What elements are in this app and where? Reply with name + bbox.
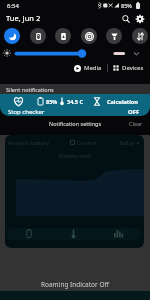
button[interactable]: Settings bbox=[133, 12, 146, 25]
button[interactable]: Clear bbox=[126, 117, 146, 130]
staticText: Devices bbox=[122, 64, 144, 72]
button[interactable]: Flashlight bbox=[106, 28, 122, 44]
button[interactable]: Notification settings bbox=[46, 117, 105, 130]
button[interactable]: Statistics bbox=[96, 228, 141, 240]
staticText: 6:54 bbox=[7, 2, 19, 10]
button[interactable]: Battery bbox=[7, 228, 51, 240]
staticText: 85% bbox=[46, 98, 58, 105]
staticText: Calculation bbox=[107, 98, 138, 105]
staticText: Clear bbox=[129, 120, 143, 127]
staticText: Today bbox=[119, 139, 135, 146]
staticText: Stop checker bbox=[8, 108, 45, 116]
button[interactable]: Location bbox=[81, 28, 97, 44]
staticText: Media bbox=[84, 64, 102, 72]
staticText: 85% bbox=[121, 2, 132, 9]
button[interactable]: Auto rotate bbox=[55, 28, 71, 44]
button[interactable]: Media bbox=[73, 62, 103, 74]
button[interactable]: Mobile data bbox=[132, 28, 148, 44]
staticText: Roaming Indicator Off bbox=[41, 280, 109, 289]
button[interactable]: Expand quick settings bbox=[130, 47, 143, 60]
staticText: OFF bbox=[128, 108, 140, 116]
button[interactable]: Search bbox=[119, 12, 132, 25]
staticText: Current bbox=[77, 139, 97, 146]
button[interactable]: Devices bbox=[112, 62, 145, 74]
staticText: Battery level bbox=[59, 152, 91, 159]
button[interactable]: 85% bbox=[0, 94, 150, 116]
button[interactable]: Today bbox=[118, 139, 141, 146]
button[interactable]: Temperature bbox=[51, 228, 96, 240]
button[interactable]: Current bbox=[69, 139, 98, 146]
staticText: Analysis battery bbox=[8, 139, 49, 146]
staticText: Notification settings bbox=[49, 120, 102, 127]
staticText: Tue, Jun 2 bbox=[6, 13, 41, 23]
staticText: Silent notifications bbox=[6, 86, 54, 93]
button[interactable]: Screen lock bbox=[30, 28, 46, 44]
staticText: 34.5 C bbox=[67, 98, 83, 105]
button[interactable]: Do Not Disturb bbox=[4, 28, 20, 44]
